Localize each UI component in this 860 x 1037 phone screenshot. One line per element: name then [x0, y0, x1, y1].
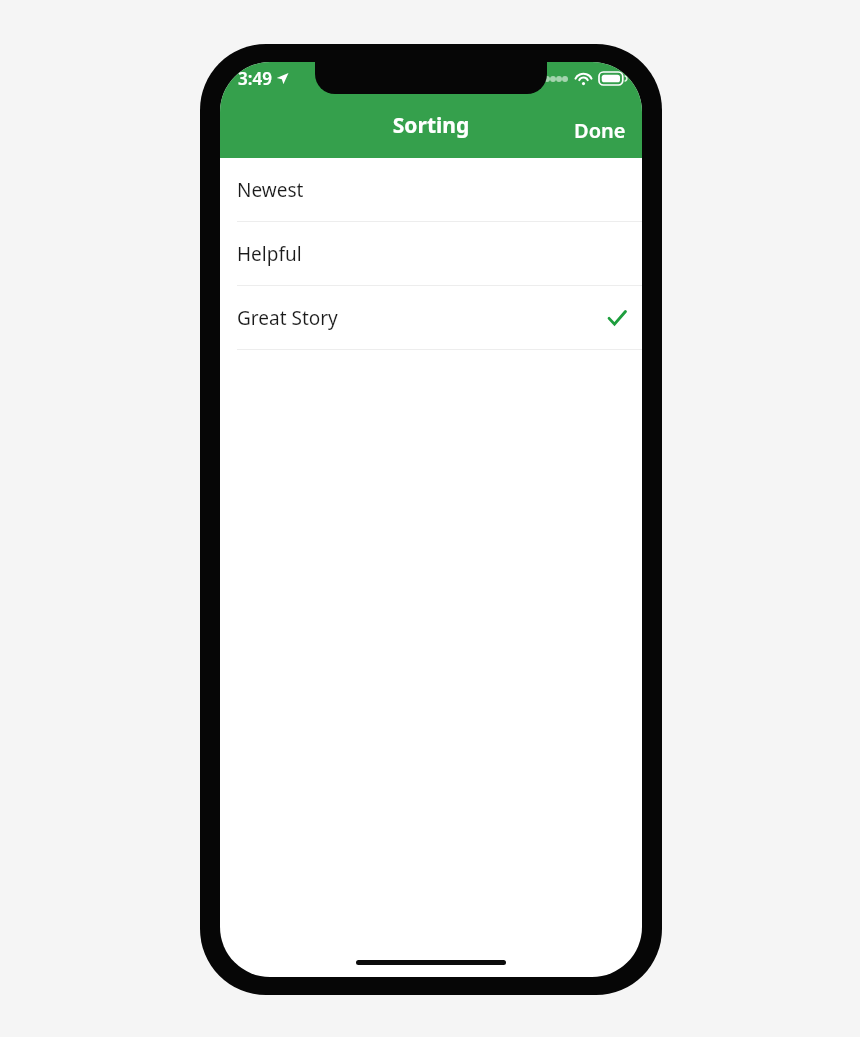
- button[interactable]: Newest: [220, 158, 642, 221]
- button[interactable]: Great Story: [220, 286, 642, 349]
- staticText: Helpful: [237, 241, 302, 267]
- staticText: Done: [574, 117, 626, 144]
- button[interactable]: Done: [558, 107, 642, 158]
- staticText: 3:49: [238, 67, 272, 90]
- other: Selected: [608, 309, 626, 327]
- staticText: Great Story: [237, 305, 338, 331]
- staticText: Sorting: [220, 111, 642, 140]
- staticText: Newest: [237, 177, 304, 203]
- button[interactable]: Helpful: [220, 222, 642, 285]
